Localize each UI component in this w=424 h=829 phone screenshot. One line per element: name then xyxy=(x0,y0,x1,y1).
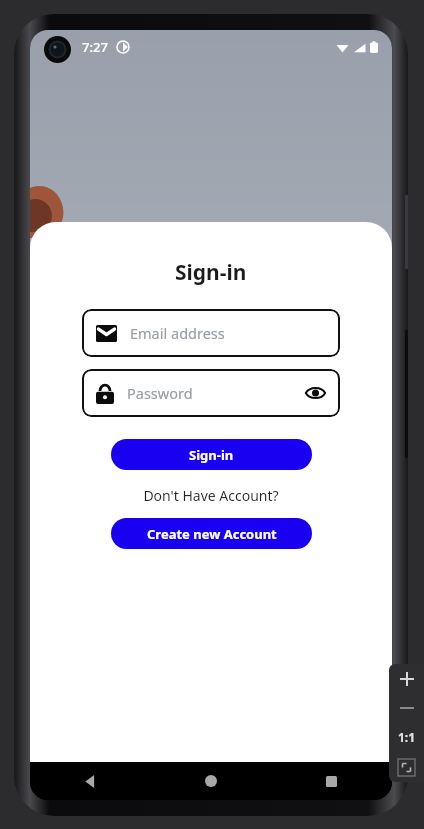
button[interactable]: Actual size xyxy=(389,722,424,752)
button[interactable]: Home xyxy=(150,762,271,800)
button[interactable]: Email address xyxy=(82,309,340,357)
staticText: Password xyxy=(127,383,193,403)
button[interactable]: Show password xyxy=(302,380,328,406)
button[interactable]: Zoom out xyxy=(389,694,424,722)
button[interactable]: Sign-in xyxy=(111,439,312,470)
staticText: 7:27 xyxy=(82,38,108,56)
staticText: Don't Have Account? xyxy=(143,486,279,505)
button[interactable]: Zoom in xyxy=(389,664,424,694)
button[interactable]: Create new Account xyxy=(111,518,312,549)
staticText: Sign-in xyxy=(175,258,247,287)
button[interactable]: Back xyxy=(30,762,150,800)
button[interactable]: Password xyxy=(82,369,340,417)
button[interactable]: Fit to window xyxy=(389,752,424,782)
staticText: Email address xyxy=(130,323,225,343)
staticText: 1:1 xyxy=(398,729,416,745)
button[interactable]: Recent apps xyxy=(271,762,392,800)
staticText: Create new Account xyxy=(147,525,277,543)
staticText: Sign-in xyxy=(189,446,234,464)
